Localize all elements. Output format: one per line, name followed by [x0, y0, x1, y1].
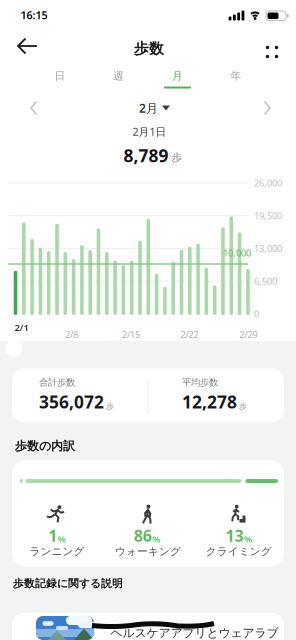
- button[interactable]: [24, 98, 44, 118]
- staticText: 12,278: [182, 390, 237, 413]
- staticText: 週: [113, 69, 124, 82]
- button[interactable]: 年: [212, 64, 260, 88]
- staticText: ランニング: [29, 545, 84, 558]
- staticText: 16:15: [20, 8, 47, 22]
- staticText: 2月1日: [132, 124, 166, 139]
- staticText: ヘルスケアアプリとウェアラブ: [110, 626, 278, 640]
- staticText: 歩数記録に関する説明: [13, 577, 123, 590]
- staticText: 2/22: [180, 328, 198, 341]
- staticText: 2/1: [14, 321, 28, 334]
- staticText: 年: [230, 69, 241, 82]
- staticText: 平均歩数: [182, 377, 218, 388]
- staticText: 86: [134, 525, 152, 546]
- button[interactable]: [257, 98, 277, 118]
- button[interactable]: 日: [36, 64, 84, 88]
- staticText: 2/15: [122, 328, 140, 341]
- staticText: ウォーキング: [115, 545, 181, 558]
- staticText: 歩: [106, 401, 114, 411]
- staticText: 歩数: [134, 39, 164, 57]
- button[interactable]: [259, 40, 285, 64]
- button[interactable]: [10, 31, 44, 61]
- staticText: 13,000: [254, 242, 282, 255]
- staticText: 8,789: [123, 144, 168, 167]
- staticText: 6,500: [254, 275, 277, 287]
- button[interactable]: [5, 340, 22, 357]
- button[interactable]: 月: [153, 64, 201, 88]
- button[interactable]: 週: [94, 64, 142, 88]
- staticText: 月: [172, 69, 183, 82]
- staticText: 日: [54, 69, 65, 82]
- button[interactable]: 2月: [139, 100, 170, 116]
- staticText: 2/29: [239, 328, 257, 341]
- staticText: 356,072: [39, 390, 104, 413]
- staticText: 歩数の内訳: [15, 439, 75, 453]
- staticText: 19,500: [254, 209, 282, 222]
- staticText: 13: [225, 525, 243, 546]
- staticText: 10,000: [223, 247, 251, 259]
- staticText: 歩: [171, 151, 182, 164]
- staticText: 26,000: [254, 177, 282, 189]
- staticText: %: [152, 533, 160, 545]
- staticText: クライミング: [206, 545, 272, 558]
- staticText: 0: [254, 308, 259, 320]
- staticText: 2/8: [65, 328, 78, 341]
- staticText: 2月: [139, 100, 158, 116]
- staticText: 合計歩数: [39, 377, 75, 388]
- staticText: %: [244, 533, 252, 545]
- staticText: %: [58, 533, 66, 545]
- staticText: 歩: [239, 401, 247, 411]
- staticText: 1: [48, 525, 57, 546]
- button[interactable]: ヘルスケアアプリとウェアラブ: [12, 613, 284, 640]
